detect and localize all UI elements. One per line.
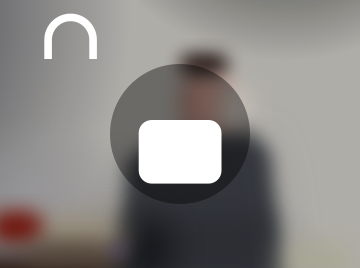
button[interactable]: Show sensitive photo (110, 64, 250, 204)
